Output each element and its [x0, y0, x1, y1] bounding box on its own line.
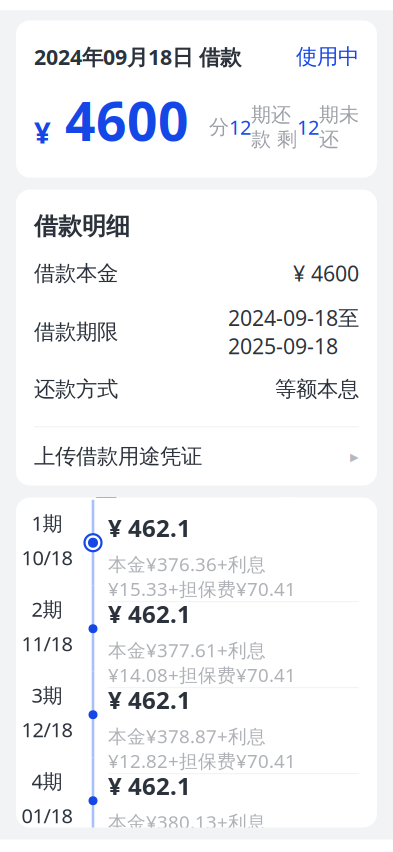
staticText: 期未还: [319, 102, 359, 152]
staticText: 4600: [51, 85, 189, 156]
staticText: 3期: [31, 682, 62, 708]
staticText: 2期: [31, 596, 62, 622]
staticText: 分: [209, 115, 229, 139]
button[interactable]: 3期: [16, 680, 377, 766]
button[interactable]: 上传借款用途凭证: [34, 427, 359, 485]
staticText: 期还款 剩: [251, 102, 297, 152]
staticText: 本金¥378.87+利息¥12.82+担保费¥70.41: [108, 724, 296, 773]
staticText: ‹: [21, 0, 34, 12]
staticText: ¥: [34, 113, 51, 152]
staticText: 12/18: [21, 716, 72, 743]
staticText: 借款期限: [34, 319, 118, 345]
staticText: ¥ 462.1: [108, 684, 191, 716]
staticText: 使用中: [296, 43, 359, 70]
button[interactable]: 还款计划: [16, 443, 196, 498]
button[interactable]: 2期: [16, 594, 377, 680]
staticText: ¥ 4600: [293, 259, 359, 287]
staticText: 1期: [31, 510, 62, 536]
staticText: 借款本金: [34, 260, 118, 286]
staticText: ¥ 462.1: [108, 512, 191, 544]
staticText: 本金¥380.13+利息¥11.56+担保费¥70.41: [108, 810, 296, 852]
staticText: 借款明细: [34, 212, 130, 241]
staticText: ¥ 462.1: [108, 770, 191, 802]
staticText: 还款记录: [241, 461, 333, 489]
staticText: 2024-09-18至2025-09-18: [228, 303, 359, 360]
staticText: 10/18: [21, 544, 72, 571]
staticText: 11/18: [21, 630, 72, 657]
button[interactable]: 1期: [16, 508, 377, 594]
staticText: 本金¥376.36+利息¥15.33+担保费¥70.41: [108, 552, 296, 601]
staticText: 2024年09月18日 借款: [34, 42, 241, 71]
staticText: 12: [229, 114, 251, 140]
staticText: 01/18: [21, 802, 72, 829]
staticText: 12: [297, 114, 319, 140]
staticText: 4期: [31, 768, 62, 794]
staticText: ▸: [350, 447, 359, 466]
staticText: ¥ 462.1: [108, 598, 191, 630]
button[interactable]: 还款记录: [196, 443, 377, 498]
staticText: 还款方式: [34, 376, 118, 402]
staticText: 上传借款用途凭证: [34, 443, 202, 469]
staticText: 等额本息: [275, 376, 359, 402]
staticText: 本金¥377.61+利息¥14.08+担保费¥70.41: [108, 638, 296, 687]
staticText: 还款计划: [60, 461, 152, 489]
button[interactable]: 4期: [16, 766, 377, 852]
